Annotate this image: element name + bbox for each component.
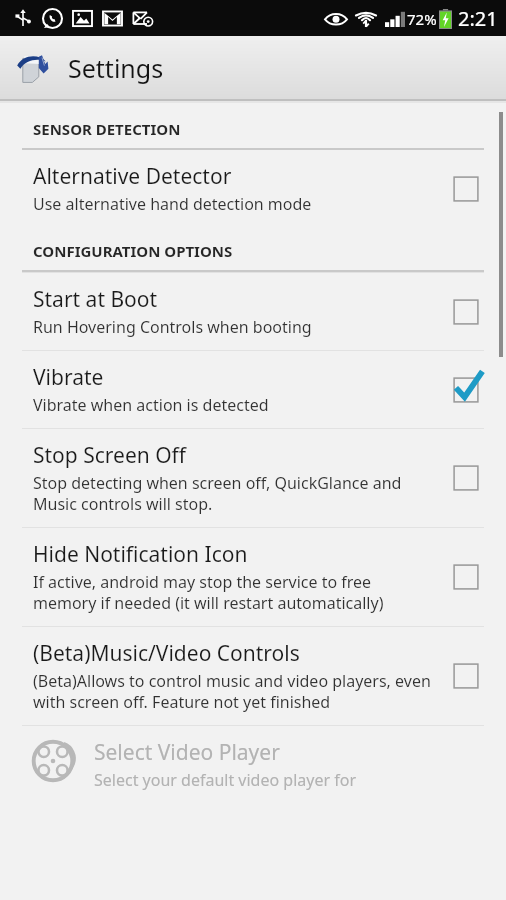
staticText: Select your default video player for — [94, 769, 357, 791]
staticText: Run Hovering Controls when booting — [33, 316, 312, 338]
staticText: Stop detecting when screen off, QuickGla… — [33, 472, 432, 515]
staticText: Alternative Detector — [33, 162, 232, 191]
staticText: Stop Screen Off — [33, 441, 187, 470]
staticText: (Beta)Music/Video Controls — [33, 639, 300, 668]
staticText: SENSOR DETECTION — [33, 119, 181, 139]
button[interactable]: Settings — [0, 36, 506, 99]
staticText: Vibrate — [33, 363, 104, 392]
button[interactable]: Stop Screen Off — [0, 429, 506, 527]
button[interactable]: Start at Boot — [0, 273, 506, 350]
staticText: Select Video Player — [94, 738, 280, 767]
staticText: Settings — [68, 51, 164, 85]
staticText: Vibrate when action is detected — [33, 394, 269, 416]
staticText: Start at Boot — [33, 285, 158, 314]
staticText: Hide Notification Icon — [33, 540, 248, 569]
staticText: (Beta)Allows to control music and video … — [33, 670, 432, 713]
staticText: Use alternative hand detection mode — [33, 193, 312, 215]
staticText: CONFIGURATION OPTIONS — [33, 241, 233, 261]
button[interactable]: Select Video Player — [0, 726, 506, 791]
staticText: 2:21 — [458, 5, 498, 32]
button[interactable]: (Beta)Music/Video Controls — [0, 627, 506, 725]
staticText: If active, android may stop the service … — [33, 571, 432, 614]
button[interactable]: Hide Notification Icon — [0, 528, 506, 626]
button[interactable]: Vibrate — [0, 351, 506, 428]
button[interactable]: Alternative Detector — [0, 150, 506, 227]
staticText: 72% — [407, 9, 437, 29]
